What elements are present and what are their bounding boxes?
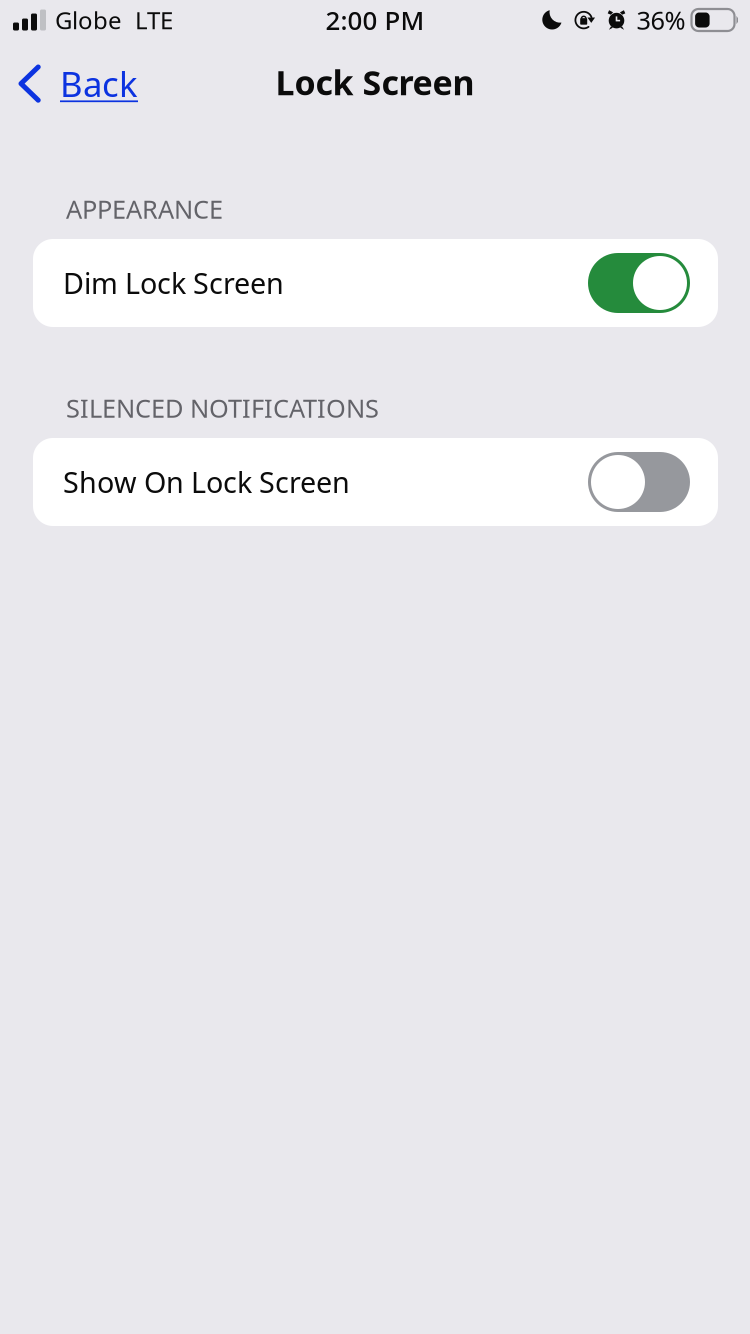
staticText: Lock Screen — [275, 59, 474, 105]
button[interactable]: Show On Lock Screen — [588, 452, 690, 512]
button[interactable]: Back — [0, 47, 152, 117]
staticText: SILENCED NOTIFICATIONS — [66, 391, 379, 425]
staticText: 36% — [636, 3, 685, 37]
staticText: APPEARANCE — [66, 192, 223, 226]
staticText: 2:00 PM — [325, 2, 424, 38]
staticText: Globe — [55, 4, 122, 36]
staticText: Back — [60, 60, 138, 107]
staticText: Dim Lock Screen — [63, 263, 284, 302]
staticText: LTE — [135, 4, 173, 36]
button[interactable]: Dim Lock Screen — [588, 253, 690, 313]
button[interactable]: Show On Lock Screen — [33, 438, 718, 526]
staticText: Show On Lock Screen — [63, 462, 350, 501]
button[interactable]: Dim Lock Screen — [33, 239, 718, 327]
